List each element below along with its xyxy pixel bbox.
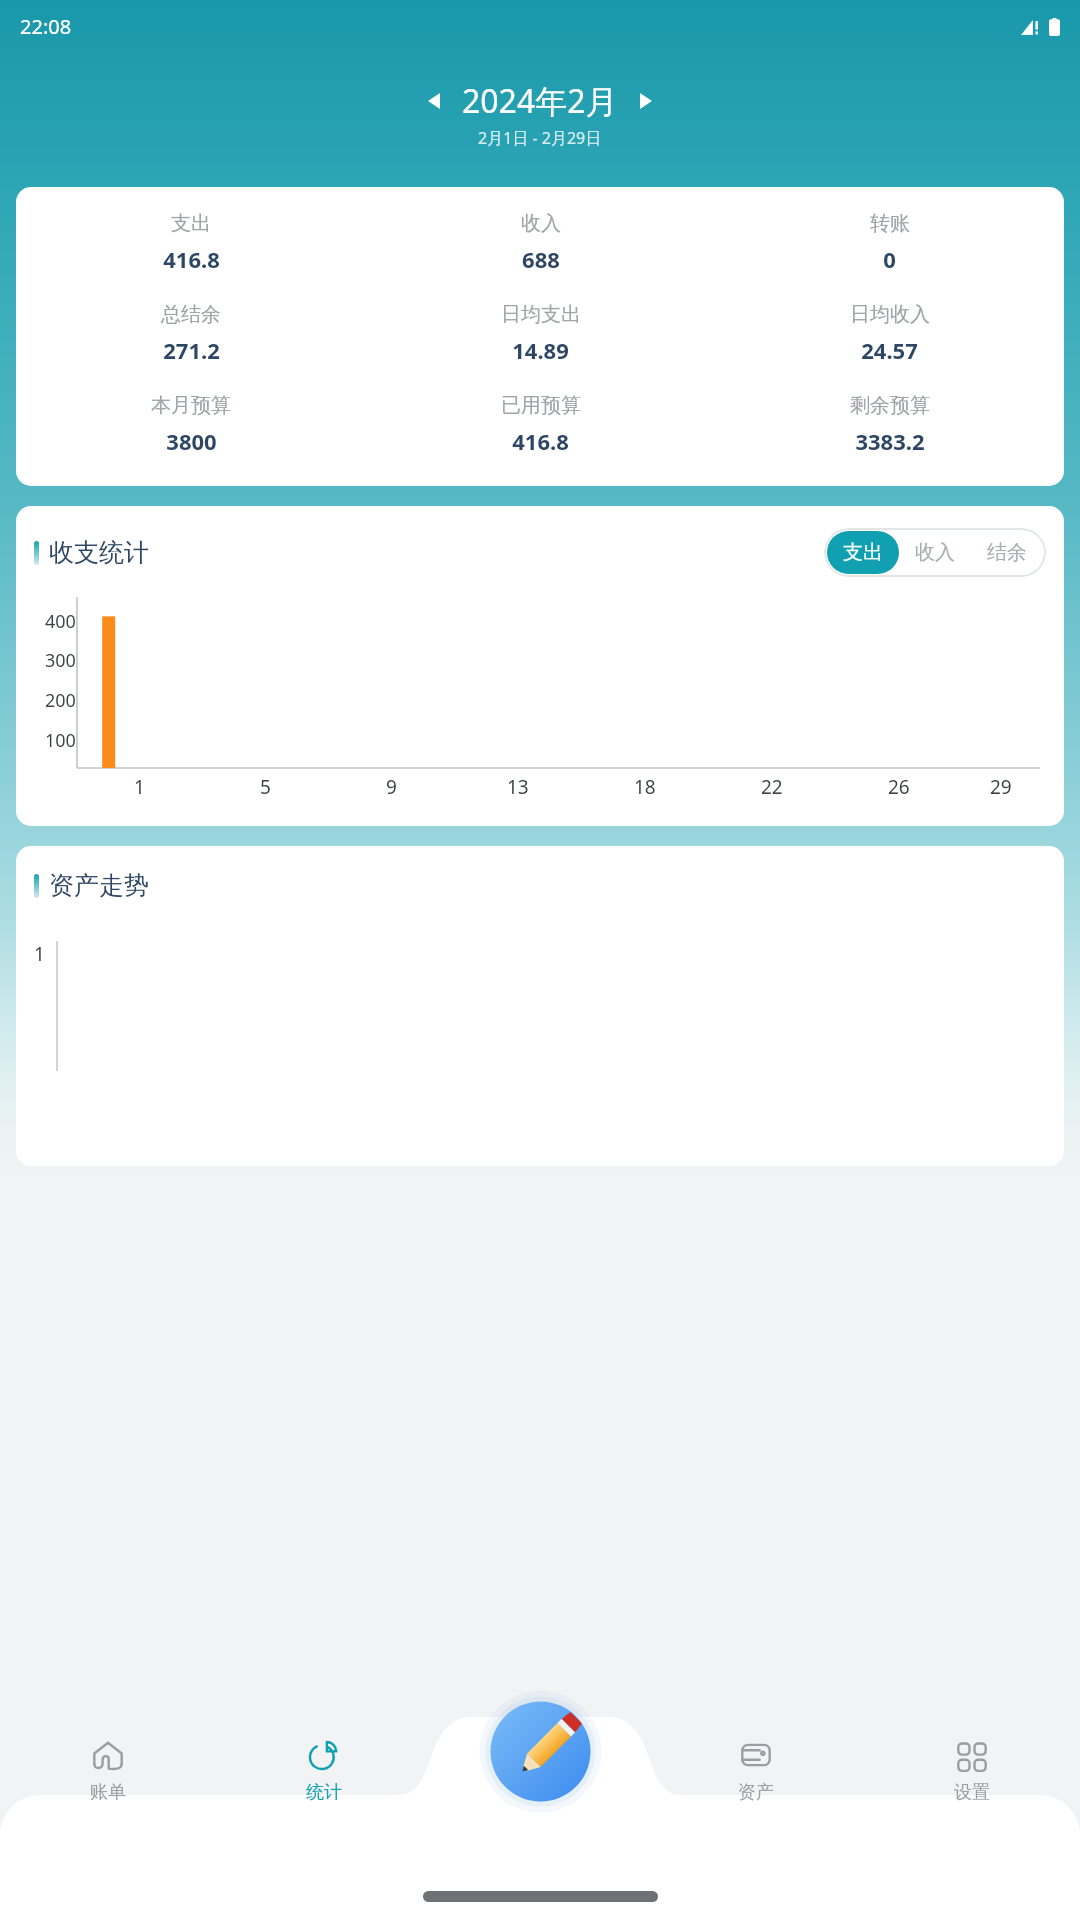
staticText: 2月1日 - 2月29日 [478,127,602,149]
staticText: 总结余 [161,302,221,327]
staticText: 416.8 [512,426,569,456]
staticText: 统计 [306,1781,342,1804]
staticText: 100 [45,728,76,753]
button[interactable]: 统计 [216,1733,432,1808]
button[interactable]: 账单 [0,1733,216,1808]
staticText: 416.8 [163,244,220,274]
button[interactable]: 记一笔 [478,1689,603,1814]
staticText: 资产走势 [49,870,149,901]
staticText: 13 [507,774,529,800]
staticText: 结余 [987,540,1027,565]
staticText: 9 [386,774,397,800]
staticText: 本月预算 [151,393,231,418]
staticText: 支出 [843,540,883,565]
staticText: 3383.2 [855,426,925,456]
button[interactable]: 支出 [16,187,1064,486]
staticText: 收入 [915,540,955,565]
staticText: 日均收入 [850,302,930,327]
staticText: 0 [883,244,896,274]
staticText: 26 [888,774,910,800]
staticText: 1 [34,941,45,967]
button[interactable]: 下个月 [628,83,664,119]
button[interactable]: 设置 [864,1733,1080,1808]
staticText: 18 [634,774,656,800]
staticText: 已用预算 [501,393,581,418]
button[interactable]: 收入 [899,531,971,574]
staticText: 支出 [171,211,211,236]
staticText: 3800 [166,426,217,456]
staticText: 1 [134,774,145,800]
button[interactable]: 资产 [648,1733,864,1808]
staticText: 资产 [738,1781,774,1804]
staticText: 设置 [954,1781,990,1804]
staticText: 271.2 [163,335,220,365]
staticText: 日均支出 [501,302,581,327]
staticText: 29 [990,774,1012,800]
button[interactable]: 支出 [827,531,899,574]
staticText: 24.57 [861,335,918,365]
staticText: 收入 [521,211,561,236]
staticText: 300 [45,648,76,673]
staticText: 400 [45,609,76,634]
button[interactable]: 上个月 [416,83,452,119]
staticText: 收支统计 [49,537,149,568]
button[interactable]: 结余 [971,531,1043,574]
staticText: 剩余预算 [850,393,930,418]
staticText: 22 [761,774,783,800]
staticText: 账单 [90,1781,126,1804]
staticText: 5 [260,774,271,800]
staticText: 14.89 [512,335,569,365]
staticText: 2024年2月 [462,79,618,123]
staticText: 200 [45,688,76,713]
staticText: 转账 [870,211,910,236]
staticText: 22:08 [20,13,72,40]
staticText: 688 [522,244,560,274]
